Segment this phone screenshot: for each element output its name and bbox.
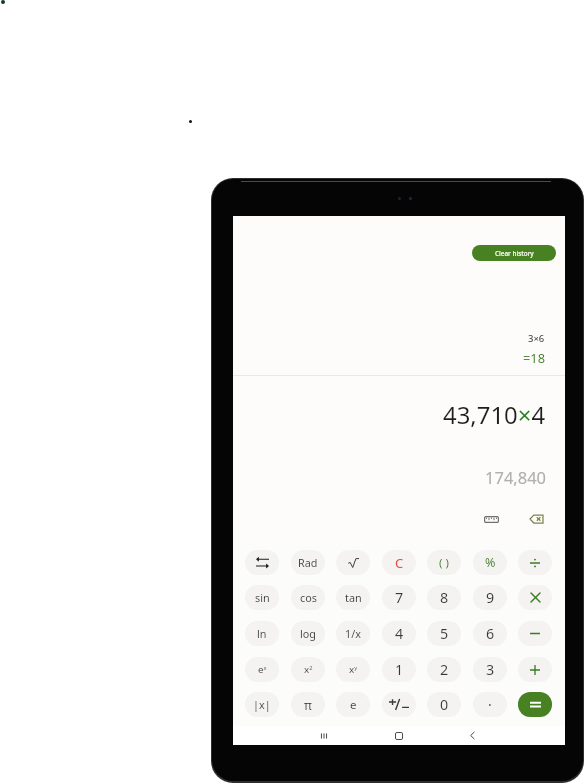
button[interactable]: 1 bbox=[382, 657, 416, 682]
staticText: ( ) bbox=[439, 555, 449, 571]
button[interactable]: Home bbox=[388, 726, 410, 745]
button[interactable] bbox=[336, 550, 370, 575]
staticText: 43,710×4 bbox=[443, 398, 546, 431]
button[interactable] bbox=[518, 657, 552, 682]
button[interactable]: 4 bbox=[382, 621, 416, 646]
button[interactable] bbox=[518, 550, 552, 575]
button[interactable]: % bbox=[473, 550, 507, 575]
staticText: Rad bbox=[298, 555, 318, 570]
button[interactable]: · bbox=[473, 692, 507, 717]
staticText: 1/x bbox=[345, 626, 361, 641]
button[interactable]: xy bbox=[336, 657, 370, 682]
button[interactable] bbox=[382, 692, 416, 717]
button[interactable]: Clear history bbox=[472, 245, 556, 261]
button[interactable]: ex bbox=[245, 657, 279, 682]
button[interactable]: 1/x bbox=[336, 621, 370, 646]
button[interactable] bbox=[518, 621, 552, 646]
button[interactable]: 0 bbox=[427, 692, 461, 717]
staticText: |x| bbox=[253, 697, 271, 712]
staticText: % bbox=[485, 554, 496, 571]
button[interactable] bbox=[518, 692, 552, 717]
button[interactable]: |x| bbox=[245, 692, 279, 717]
staticText: 0 bbox=[440, 695, 449, 714]
staticText: 8 bbox=[440, 588, 449, 607]
staticText: ex bbox=[258, 663, 267, 676]
button[interactable] bbox=[518, 585, 552, 610]
staticText: ln bbox=[257, 626, 267, 641]
button[interactable]: log bbox=[291, 621, 325, 646]
staticText: 3×6 bbox=[528, 332, 545, 345]
staticText: 1 bbox=[395, 660, 404, 679]
staticText: tan bbox=[345, 590, 362, 605]
button[interactable]: 7 bbox=[382, 585, 416, 610]
staticText: 5 bbox=[440, 624, 449, 643]
staticText: C bbox=[395, 554, 404, 572]
button[interactable]: ( ) bbox=[427, 550, 461, 575]
button[interactable]: Rad bbox=[291, 550, 325, 575]
staticText: 9 bbox=[486, 588, 495, 607]
staticText: 3 bbox=[486, 660, 495, 679]
staticText: π bbox=[304, 697, 312, 713]
button[interactable]: Backspace bbox=[521, 507, 551, 531]
staticText: Clear history bbox=[495, 249, 534, 258]
staticText: 4 bbox=[395, 624, 404, 643]
button[interactable]: Back bbox=[461, 726, 483, 745]
staticText: 6 bbox=[486, 624, 495, 643]
staticText: 174,840 bbox=[485, 466, 547, 488]
staticText: 2 bbox=[440, 660, 449, 679]
button[interactable]: 9 bbox=[473, 585, 507, 610]
staticText: x2 bbox=[304, 663, 313, 676]
button[interactable]: tan bbox=[336, 585, 370, 610]
button[interactable]: e bbox=[336, 692, 370, 717]
staticText: cos bbox=[300, 590, 317, 605]
button[interactable]: ln bbox=[245, 621, 279, 646]
staticText: sin bbox=[255, 590, 270, 605]
button[interactable]: π bbox=[291, 692, 325, 717]
button[interactable]: 2 bbox=[427, 657, 461, 682]
staticText: 7 bbox=[395, 588, 404, 607]
button[interactable]: 8 bbox=[427, 585, 461, 610]
button[interactable]: C bbox=[382, 550, 416, 575]
button[interactable] bbox=[245, 550, 279, 575]
button[interactable]: cos bbox=[291, 585, 325, 610]
button[interactable]: 5 bbox=[427, 621, 461, 646]
button[interactable]: 6 bbox=[473, 621, 507, 646]
staticText: e bbox=[350, 697, 357, 713]
staticText: · bbox=[488, 695, 492, 714]
staticText: xy bbox=[349, 663, 358, 676]
button[interactable]: x2 bbox=[291, 657, 325, 682]
button[interactable]: Unit converter bbox=[476, 507, 506, 531]
button[interactable]: Recents bbox=[313, 726, 335, 745]
button[interactable]: 3 bbox=[473, 657, 507, 682]
staticText: log bbox=[300, 626, 316, 641]
staticText: =18 bbox=[523, 349, 545, 366]
button[interactable]: sin bbox=[245, 585, 279, 610]
